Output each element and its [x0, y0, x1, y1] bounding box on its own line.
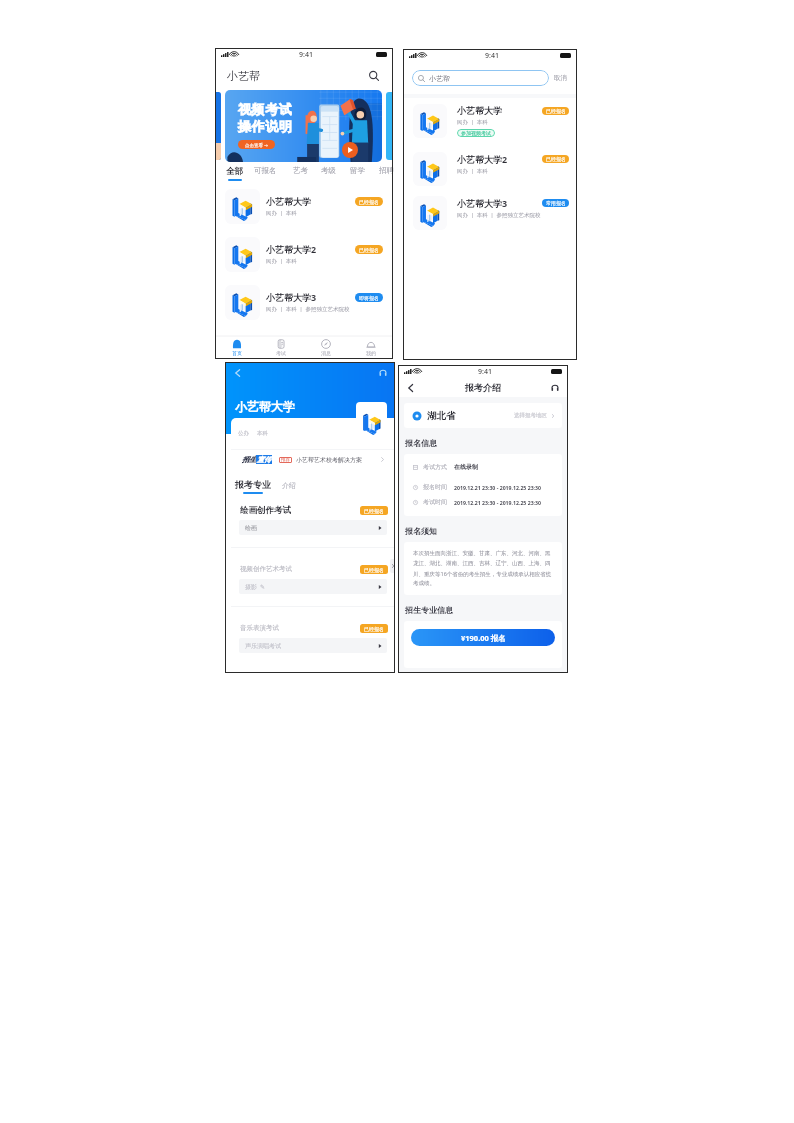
- staticText: 小艺帮: [429, 74, 450, 83]
- staticText: 音乐表演考试: [240, 624, 279, 632]
- button[interactable]: 招聘: [379, 166, 394, 175]
- staticText: 招聘: [379, 166, 394, 175]
- staticText: 报名信息: [405, 438, 437, 448]
- button[interactable]: 视频考试: [225, 90, 382, 162]
- button[interactable]: Customer support: [376, 366, 389, 379]
- staticText: 操作说明: [238, 118, 293, 134]
- button[interactable]: 首页: [215, 336, 259, 359]
- button[interactable]: 小艺帮大学3: [403, 190, 577, 234]
- button[interactable]: 全部: [226, 166, 243, 181]
- staticText: 取消: [554, 74, 567, 82]
- staticText: 常用报名: [546, 200, 566, 206]
- staticText: 绘画: [245, 524, 257, 532]
- staticText: 本科: [257, 430, 268, 437]
- staticText: 民办 | 本科: [266, 209, 297, 217]
- staticText: 全部: [226, 166, 243, 177]
- button[interactable]: 消息: [303, 336, 348, 359]
- staticText: 报考专业: [235, 479, 271, 490]
- staticText: 2019.12.21 23:30 - 2019.12.25 23:30: [454, 499, 542, 506]
- staticText: 小艺帮大学: [457, 105, 502, 116]
- staticText: 报名须知: [405, 526, 437, 536]
- button[interactable]: 摄影 ✎: [239, 579, 387, 594]
- button[interactable]: 招生: [231, 450, 395, 469]
- button[interactable]: 小艺帮大学: [403, 98, 577, 146]
- button[interactable]: Back: [405, 382, 417, 394]
- staticText: 我的: [366, 350, 376, 356]
- button[interactable]: 已经报名: [360, 624, 388, 633]
- staticText: 已经报名: [359, 247, 379, 253]
- staticText: 留学: [350, 166, 365, 175]
- staticText: 招生专业信息: [405, 605, 453, 615]
- staticText: 民办 | 本科: [457, 167, 488, 175]
- button[interactable]: ¥190.00 报名: [411, 629, 555, 646]
- staticText: 已经报名: [364, 567, 384, 573]
- staticText: 选择报考地区: [514, 412, 547, 419]
- staticText: 小艺帮大学2: [457, 153, 508, 165]
- staticText: 宣传: [257, 455, 271, 464]
- staticText: 视频创作艺术考试: [240, 565, 292, 573]
- staticText: 2019.12.21 23:30 - 2019.12.25 23:30: [454, 484, 542, 491]
- staticText: 9:41: [478, 367, 492, 377]
- button[interactable]: 我的: [348, 336, 393, 359]
- staticText: 在线录制: [454, 463, 478, 471]
- staticText: 介绍: [282, 481, 296, 490]
- staticText: 考试: [276, 350, 286, 356]
- staticText: 公办: [238, 430, 249, 437]
- staticText: 小艺帮艺术校考解决方案: [296, 456, 362, 464]
- button[interactable]: 声乐演唱考试: [239, 638, 387, 653]
- button[interactable]: Expand: [390, 559, 395, 573]
- staticText: 本次招生面向浙江、安徽、甘肃、广东、河北、河南、黑龙江、湖北、湖南、江西、吉林、…: [413, 550, 553, 587]
- staticText: 摄影 ✎: [245, 583, 266, 591]
- button[interactable]: 可报名: [254, 166, 277, 175]
- button[interactable]: 小艺帮大学2: [403, 146, 577, 190]
- staticText: 绘画创作考试: [240, 505, 291, 516]
- staticText: 民办 | 本科 | 参照独立艺术院校: [266, 305, 350, 313]
- button[interactable]: 小艺帮大学3: [215, 278, 393, 326]
- staticText: 即将报名: [359, 295, 379, 301]
- button[interactable]: 小艺帮大学: [215, 182, 393, 230]
- staticText: 小艺帮大学: [235, 399, 295, 414]
- staticText: 报名时间: [423, 483, 447, 491]
- staticText: 湖北省: [427, 410, 456, 422]
- staticText: 已经报名: [359, 199, 379, 205]
- staticText: 小艺帮大学2: [266, 243, 317, 255]
- staticText: 民办 | 本科: [266, 257, 297, 265]
- staticText: 小艺帮大学3: [266, 291, 317, 303]
- staticText: 已经报名: [546, 156, 566, 162]
- button[interactable]: 考级: [321, 166, 336, 175]
- staticText: 可报名: [254, 166, 277, 175]
- button[interactable]: Search: [367, 69, 381, 83]
- staticText: 报考介绍: [465, 382, 501, 393]
- button[interactable]: 小艺帮大学2: [215, 230, 393, 278]
- staticText: 已经报名: [364, 508, 384, 514]
- staticText: 9:41: [299, 50, 313, 60]
- button[interactable]: Customer support: [549, 382, 561, 394]
- button[interactable]: 取消: [549, 74, 572, 82]
- button[interactable]: 湖北省: [404, 403, 562, 428]
- staticText: 艺考: [293, 166, 308, 175]
- button[interactable]: 考试: [259, 336, 303, 359]
- staticText: 小艺帮: [227, 69, 260, 83]
- staticText: 已经报名: [364, 626, 384, 632]
- button[interactable]: 报考专业: [235, 479, 271, 494]
- staticText: 消息: [321, 350, 331, 356]
- button[interactable]: Back: [231, 366, 244, 379]
- staticText: ¥190.00 报名: [461, 633, 506, 643]
- staticText: 声乐演唱考试: [245, 642, 281, 650]
- staticText: 民办 | 本科 | 参照独立艺术院校: [457, 211, 541, 219]
- staticText: 视频考试: [238, 101, 293, 117]
- staticText: 招生: [242, 455, 256, 464]
- staticText: 考级: [321, 166, 336, 175]
- staticText: 民办 | 本科: [457, 118, 488, 126]
- button[interactable]: 介绍: [282, 481, 296, 494]
- staticText: 首页: [232, 350, 242, 356]
- button[interactable]: 绘画: [239, 520, 387, 535]
- staticText: 已经报名: [546, 108, 566, 114]
- button[interactable]: 已经报名: [360, 565, 388, 574]
- staticText: 小艺帮大学3: [457, 197, 508, 209]
- button[interactable]: 小艺帮: [412, 70, 549, 86]
- button[interactable]: 艺考: [293, 166, 308, 175]
- button[interactable]: 已经报名: [360, 506, 388, 515]
- button[interactable]: 留学: [350, 166, 365, 175]
- button[interactable]: Play video: [342, 142, 358, 158]
